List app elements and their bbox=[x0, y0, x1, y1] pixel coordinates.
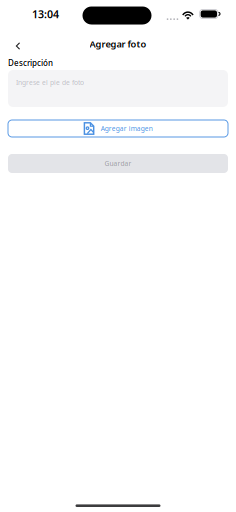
staticText: 13:04 bbox=[32, 7, 59, 21]
button[interactable]: Agregar imagen bbox=[8, 120, 228, 137]
staticText: Agregar imagen bbox=[101, 124, 153, 133]
staticText: Descripción bbox=[8, 58, 53, 68]
button[interactable]: Guardar bbox=[8, 154, 228, 173]
button[interactable]: Back bbox=[8, 32, 28, 52]
staticText: Guardar bbox=[104, 159, 131, 168]
staticText: Ingrese el pie de foto bbox=[16, 78, 84, 87]
staticText: Agregar foto bbox=[89, 38, 146, 50]
